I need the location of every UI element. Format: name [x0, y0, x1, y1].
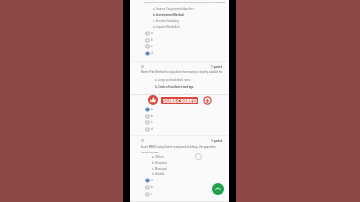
- button[interactable]: c: [145, 43, 167, 49]
- staticText: d. Laplace Relabelled: [153, 25, 180, 29]
- staticText: a: [151, 107, 153, 111]
- staticText: 1 point: [211, 139, 223, 143]
- staticText: b. Hospitals: [152, 161, 167, 165]
- staticText: b: [151, 114, 153, 118]
- staticText: controls pursue: [141, 150, 159, 153]
- button[interactable]: d: [145, 126, 167, 132]
- staticText: d: [151, 127, 153, 131]
- staticText: c: [151, 120, 153, 124]
- staticText: c. Iterative Sampling: [153, 19, 179, 23]
- button[interactable]: b: [145, 113, 167, 119]
- button[interactable]: d: [145, 50, 167, 56]
- button[interactable]: b: [145, 184, 167, 190]
- button[interactable]: a: [145, 177, 167, 183]
- staticText: a: [151, 31, 153, 35]
- staticText: A unit MMRV using Search compound buildi…: [141, 145, 216, 148]
- staticText: Practitioners selecting a majority-based…: [144, 0, 226, 3]
- staticText: b. Crisis of incidence and age: [155, 85, 194, 89]
- staticText: a. Inverse Congruential Aquifers: [153, 7, 194, 11]
- staticText: c. Municipal: [152, 167, 167, 171]
- staticText: d. Rentals: [152, 172, 165, 176]
- button[interactable]: a: [145, 106, 167, 112]
- staticText: SUBSCRIBED: [163, 97, 197, 104]
- button[interactable]: c: [145, 191, 167, 197]
- staticText: a: [151, 178, 153, 182]
- staticText: b. Incremental Method: [153, 13, 184, 17]
- button[interactable]: Scroll to top: [212, 183, 224, 195]
- button[interactable]: a: [145, 30, 167, 36]
- staticText: a. Offices: [152, 155, 164, 159]
- staticText: b: [151, 38, 153, 42]
- staticText: c: [151, 192, 153, 196]
- staticText: Monte Plan Method for population forecas…: [141, 70, 223, 73]
- staticText: a. Large and stabilized rates: [155, 78, 191, 82]
- button[interactable]: c: [145, 119, 167, 125]
- staticText: 1 point: [211, 65, 223, 69]
- button[interactable]: SUBSCRIBED: [161, 97, 198, 104]
- staticText: 5): [141, 139, 144, 143]
- button[interactable]: b: [145, 37, 167, 43]
- button[interactable]: Like: [148, 95, 158, 105]
- staticText: 4): [141, 65, 144, 69]
- staticText: d: [151, 51, 153, 55]
- staticText: b: [151, 185, 153, 189]
- staticText: c: [151, 44, 153, 48]
- button[interactable]: Notifications: [203, 96, 212, 105]
